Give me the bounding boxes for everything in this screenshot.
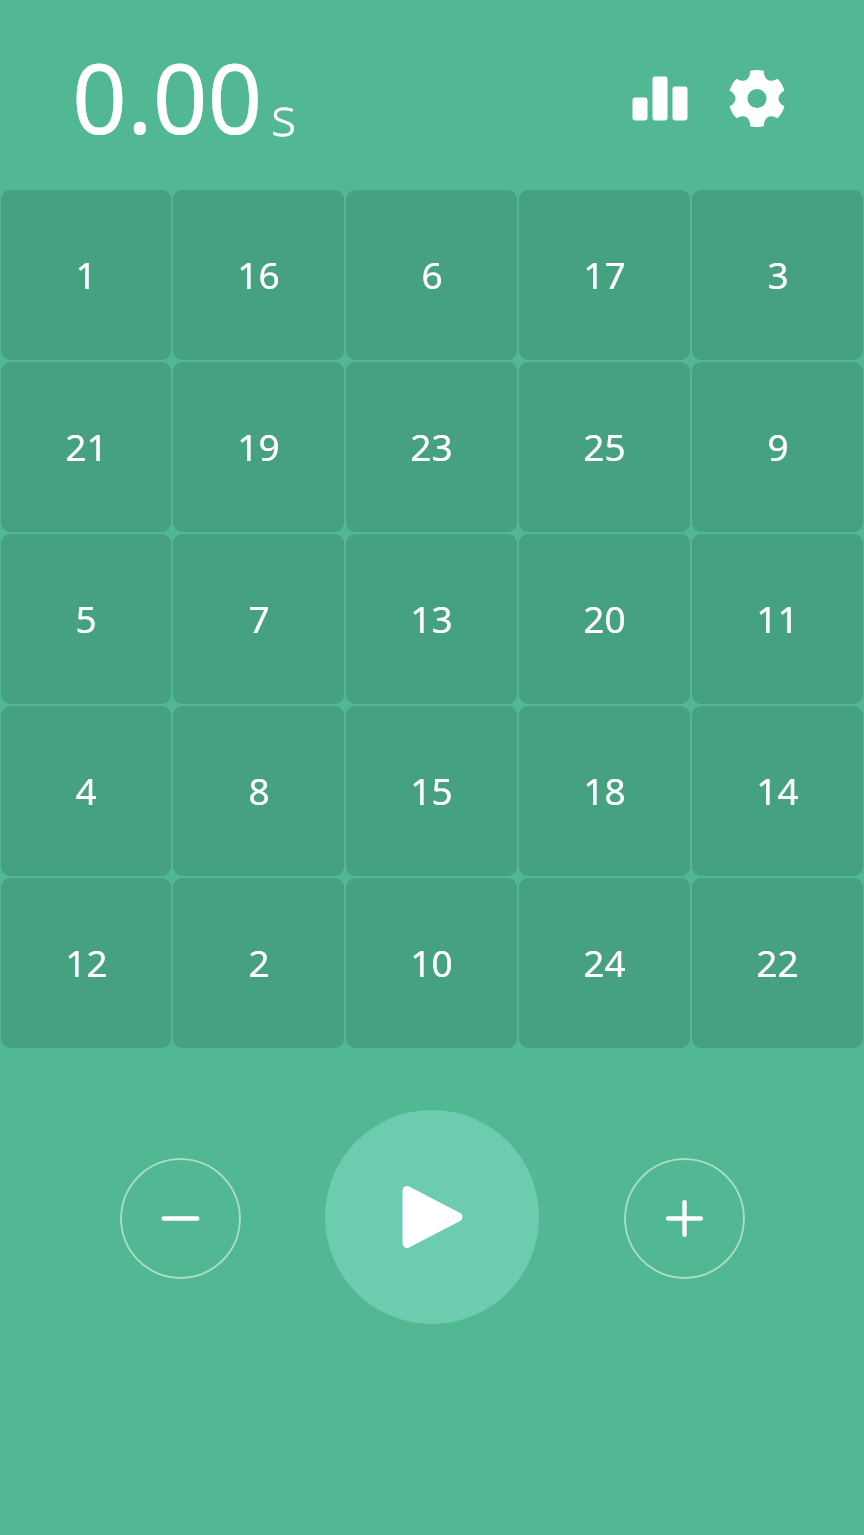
button[interactable]: 14 [692,706,863,876]
staticText: 3 [767,249,789,299]
staticText: 21 [65,421,108,471]
button[interactable]: Settings [722,63,792,133]
staticText: 23 [410,421,453,471]
button[interactable]: 15 [346,706,517,876]
staticText: 17 [583,249,626,299]
button[interactable]: 16 [173,190,344,360]
staticText: 0.00 [72,31,263,162]
button[interactable]: 8 [173,706,344,876]
button[interactable]: Statistics [628,63,698,133]
staticText: 15 [410,765,453,815]
staticText: 10 [410,937,453,987]
button[interactable]: 25 [519,362,690,532]
button[interactable]: 7 [173,534,344,704]
staticText: 25 [583,421,626,471]
staticText: s [271,78,297,152]
staticText: 16 [237,249,280,299]
button[interactable]: 5 [1,534,171,704]
staticText: 18 [583,765,626,815]
button[interactable]: 21 [1,362,171,532]
staticText: 22 [756,937,799,987]
button[interactable]: 11 [692,534,863,704]
staticText: 9 [767,421,789,471]
button[interactable]: 10 [346,878,517,1048]
button[interactable]: 23 [346,362,517,532]
button[interactable]: 4 [1,706,171,876]
button[interactable]: 20 [519,534,690,704]
button[interactable]: 18 [519,706,690,876]
staticText: 13 [410,593,453,643]
staticText: 20 [583,593,626,643]
staticText: 11 [756,593,799,643]
button[interactable]: 13 [346,534,517,704]
staticText: 7 [248,593,270,643]
staticText: 2 [248,937,270,987]
staticText: 12 [65,937,108,987]
button[interactable]: Start [325,1110,539,1324]
staticText: 4 [75,765,97,815]
staticText: 19 [237,421,280,471]
button[interactable]: 9 [692,362,863,532]
staticText: 24 [583,937,626,987]
button[interactable]: Decrease [120,1158,241,1279]
staticText: 6 [421,249,443,299]
button[interactable]: 2 [173,878,344,1048]
button[interactable]: 1 [1,190,171,360]
button[interactable]: 6 [346,190,517,360]
staticText: 1 [75,249,97,299]
button[interactable]: 12 [1,878,171,1048]
button[interactable]: 22 [692,878,863,1048]
staticText: 5 [75,593,97,643]
button[interactable]: Increase [624,1158,745,1279]
staticText: 14 [756,765,799,815]
button[interactable]: 19 [173,362,344,532]
button[interactable]: 24 [519,878,690,1048]
button[interactable]: 3 [692,190,863,360]
button[interactable]: 17 [519,190,690,360]
staticText: 8 [248,765,270,815]
